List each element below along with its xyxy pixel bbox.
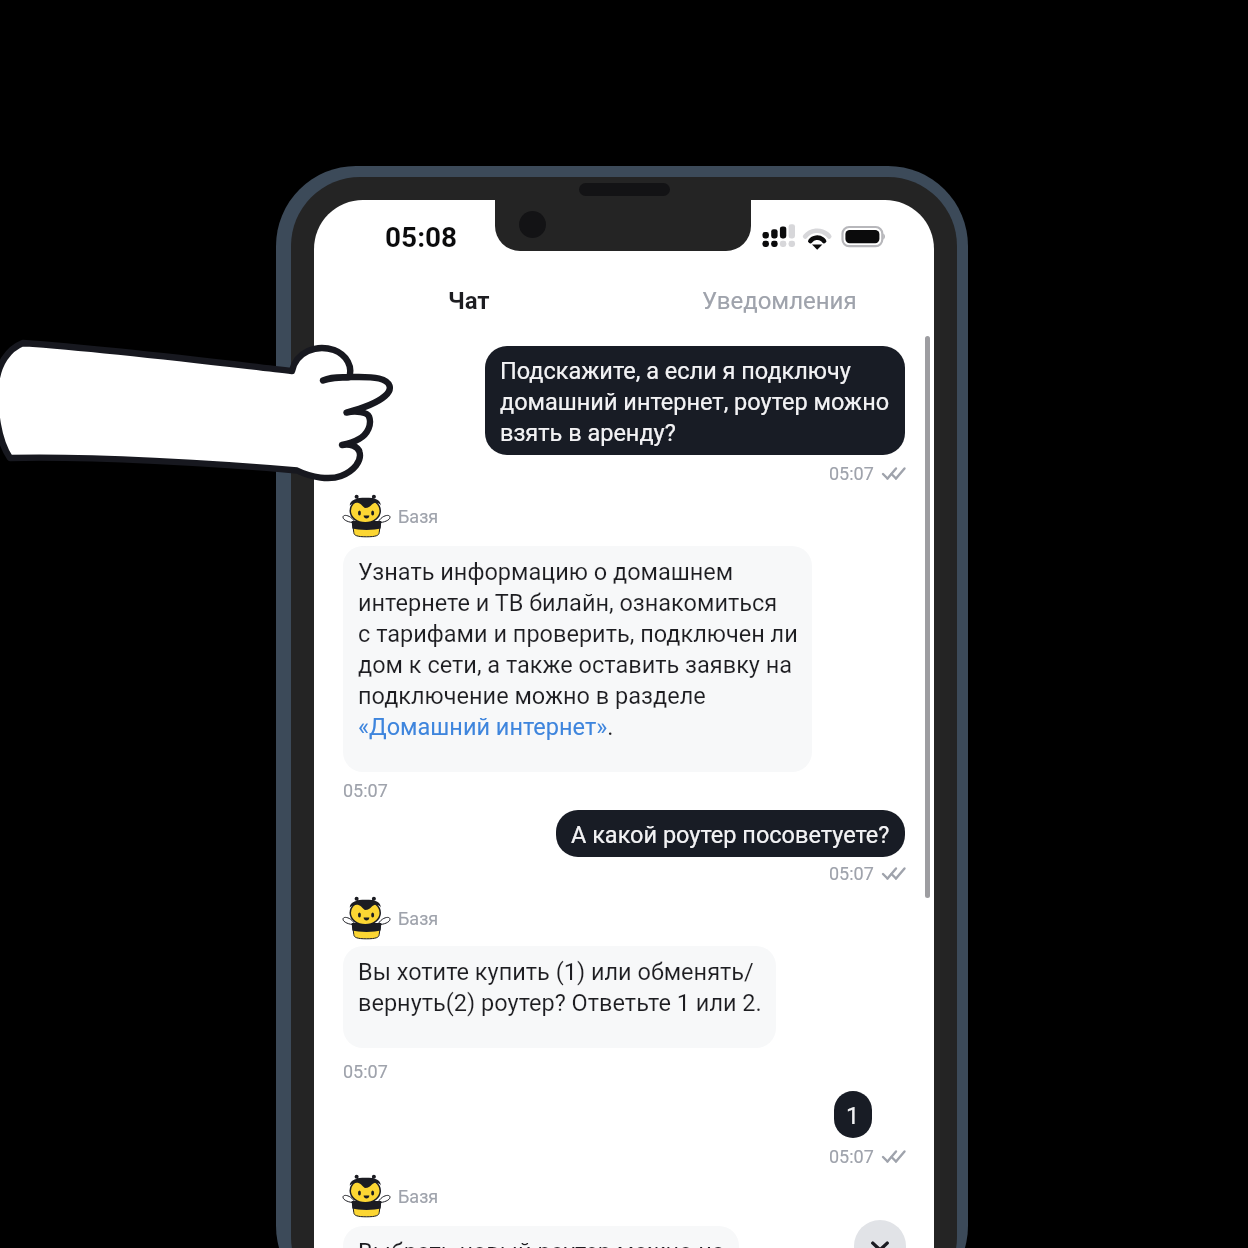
button[interactable]: Чат: [314, 284, 624, 318]
staticText: 05:08: [385, 221, 458, 254]
other: Pointing hand: [0, 0, 1248, 1248]
button[interactable]: Вы хотите купить (1) или обменять/ верну…: [343, 946, 776, 1048]
staticText: Базя: [398, 1186, 439, 1207]
button[interactable]: Выбрать новый роутер можно на сайте: [343, 1226, 739, 1248]
staticText: 05:07: [343, 1061, 388, 1082]
staticText: Подскажите, а если я подключу домашний и…: [500, 354, 890, 447]
staticText: Базя: [398, 506, 439, 527]
staticText: 1: [846, 1099, 860, 1130]
button[interactable]: А какой роутер посоветуете?: [556, 810, 905, 857]
staticText: 05:07: [829, 1146, 874, 1167]
staticText: Уведомления: [702, 287, 857, 315]
staticText: 05:07: [829, 863, 874, 884]
staticText: 05:07: [829, 463, 874, 484]
button[interactable]: 1: [834, 1091, 872, 1138]
staticText: Базя: [398, 908, 439, 929]
button[interactable]: Уведомления: [624, 284, 934, 318]
staticText: Узнать информацию о домашнем интернете и…: [358, 555, 798, 741]
button[interactable]: Подскажите, а если я подключу домашний и…: [485, 346, 905, 455]
staticText: Вы хотите купить (1) или обменять/ верну…: [358, 955, 762, 1017]
staticText: 05:07: [343, 780, 388, 801]
button[interactable]: Узнать информацию о домашнем интернете и…: [343, 546, 812, 772]
staticText: А какой роутер посоветуете?: [571, 818, 890, 849]
button[interactable]: Scroll to bottom: [854, 1220, 906, 1248]
staticText: Выбрать новый роутер можно на сайте: [358, 1235, 725, 1248]
staticText: Чат: [448, 287, 490, 315]
